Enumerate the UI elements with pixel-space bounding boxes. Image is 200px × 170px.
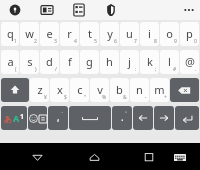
staticText: i	[148, 26, 151, 41]
staticText: :	[135, 66, 137, 73]
button[interactable]: Backspace	[170, 78, 199, 102]
button[interactable]: Back	[25, 145, 49, 169]
staticText: $	[64, 94, 67, 101]
staticText: 2	[34, 38, 37, 45]
button[interactable]: l	[160, 50, 179, 74]
staticText: f	[68, 54, 72, 69]
button[interactable]: Home	[82, 145, 106, 169]
staticText: ,	[57, 110, 60, 124]
staticText: o	[166, 26, 173, 41]
staticText: z	[37, 82, 43, 97]
staticText: a	[7, 54, 14, 69]
staticText: %	[102, 94, 107, 101]
button[interactable]: Enter	[175, 106, 199, 130]
staticText: .	[195, 66, 197, 73]
staticText: w	[25, 26, 34, 41]
staticText: d	[46, 54, 53, 69]
button[interactable]: s	[20, 50, 39, 74]
staticText: u	[126, 26, 133, 41]
staticText: t	[88, 26, 92, 41]
staticText: A	[13, 112, 20, 124]
button[interactable]: g	[80, 50, 99, 74]
button[interactable]: c	[70, 78, 89, 102]
button[interactable]: More options	[178, 0, 200, 20]
button[interactable]: p	[180, 22, 199, 46]
staticText: 1	[14, 38, 17, 45]
button[interactable]: r	[60, 22, 79, 46]
button[interactable]: Emoji and symbols	[28, 106, 47, 130]
button[interactable]: b	[110, 78, 129, 102]
staticText: 。	[125, 107, 130, 113]
staticText: 、	[61, 107, 66, 113]
staticText: &	[123, 94, 127, 101]
button[interactable]: o	[160, 22, 179, 46]
staticText: e	[46, 26, 53, 41]
button[interactable]: .	[112, 106, 132, 130]
staticText: v	[97, 82, 103, 97]
staticText: s	[27, 54, 33, 69]
button[interactable]: Text editing	[70, 1, 88, 19]
button[interactable]: Cursor left	[133, 106, 153, 130]
button[interactable]: Shift	[1, 78, 29, 102]
staticText: あ	[4, 114, 13, 124]
staticText: 7	[134, 38, 137, 45]
button[interactable]: t	[80, 22, 99, 46]
staticText: /	[55, 66, 57, 73]
staticText: )	[35, 66, 37, 73]
button[interactable]: Switch input mode	[1, 106, 27, 130]
staticText: -	[145, 94, 147, 101]
button[interactable]: j	[120, 50, 139, 74]
button[interactable]: Space	[69, 106, 111, 130]
staticText: p	[186, 26, 193, 41]
staticText: g	[86, 54, 93, 69]
staticText: ;	[155, 66, 157, 73]
button[interactable]: i	[140, 22, 159, 46]
staticText: "	[84, 94, 87, 101]
button[interactable]: h	[100, 50, 119, 74]
staticText: 8	[154, 38, 157, 45]
staticText: (	[15, 66, 17, 73]
staticText: 1	[20, 112, 25, 122]
button[interactable]: k	[140, 50, 159, 74]
button[interactable]: d	[40, 50, 59, 74]
button[interactable]: Hide keyboard	[168, 145, 192, 169]
staticText: @	[185, 54, 195, 69]
button[interactable]: f	[60, 50, 79, 74]
button[interactable]: Clipboard	[38, 1, 56, 19]
button[interactable]: m	[150, 78, 169, 102]
staticText: 0	[194, 38, 197, 45]
button[interactable]: Cursor right	[154, 106, 174, 130]
staticText: j	[128, 54, 131, 69]
button[interactable]: ,	[48, 106, 68, 130]
staticText: c	[77, 82, 83, 97]
button[interactable]: v	[90, 78, 109, 102]
button[interactable]: q	[1, 22, 19, 46]
staticText: 9	[174, 38, 177, 45]
staticText: x	[57, 82, 63, 97]
staticText: 4	[74, 38, 77, 45]
button[interactable]: e	[40, 22, 59, 46]
staticText: 3	[54, 38, 57, 45]
button[interactable]: u	[120, 22, 139, 46]
button[interactable]: Secure input	[102, 1, 120, 19]
staticText: 5	[94, 38, 97, 45]
button[interactable]: n	[130, 78, 149, 102]
button[interactable]: x	[50, 78, 69, 102]
button[interactable]: Voice input	[6, 1, 24, 19]
button[interactable]: w	[20, 22, 39, 46]
staticText: .	[121, 110, 124, 124]
staticText: y	[107, 26, 113, 41]
button[interactable]: a	[1, 50, 19, 74]
staticText: n	[136, 82, 143, 97]
staticText: h	[106, 54, 113, 69]
button[interactable]: @	[180, 50, 199, 74]
staticText: r	[67, 26, 72, 41]
staticText: ¥	[44, 94, 47, 101]
staticText: k	[147, 54, 153, 69]
staticText: m	[154, 82, 165, 97]
staticText: #	[173, 66, 177, 73]
button[interactable]: Recent apps	[137, 145, 161, 169]
button[interactable]: y	[100, 22, 119, 46]
staticText: 6	[114, 38, 117, 45]
button[interactable]: z	[30, 78, 49, 102]
